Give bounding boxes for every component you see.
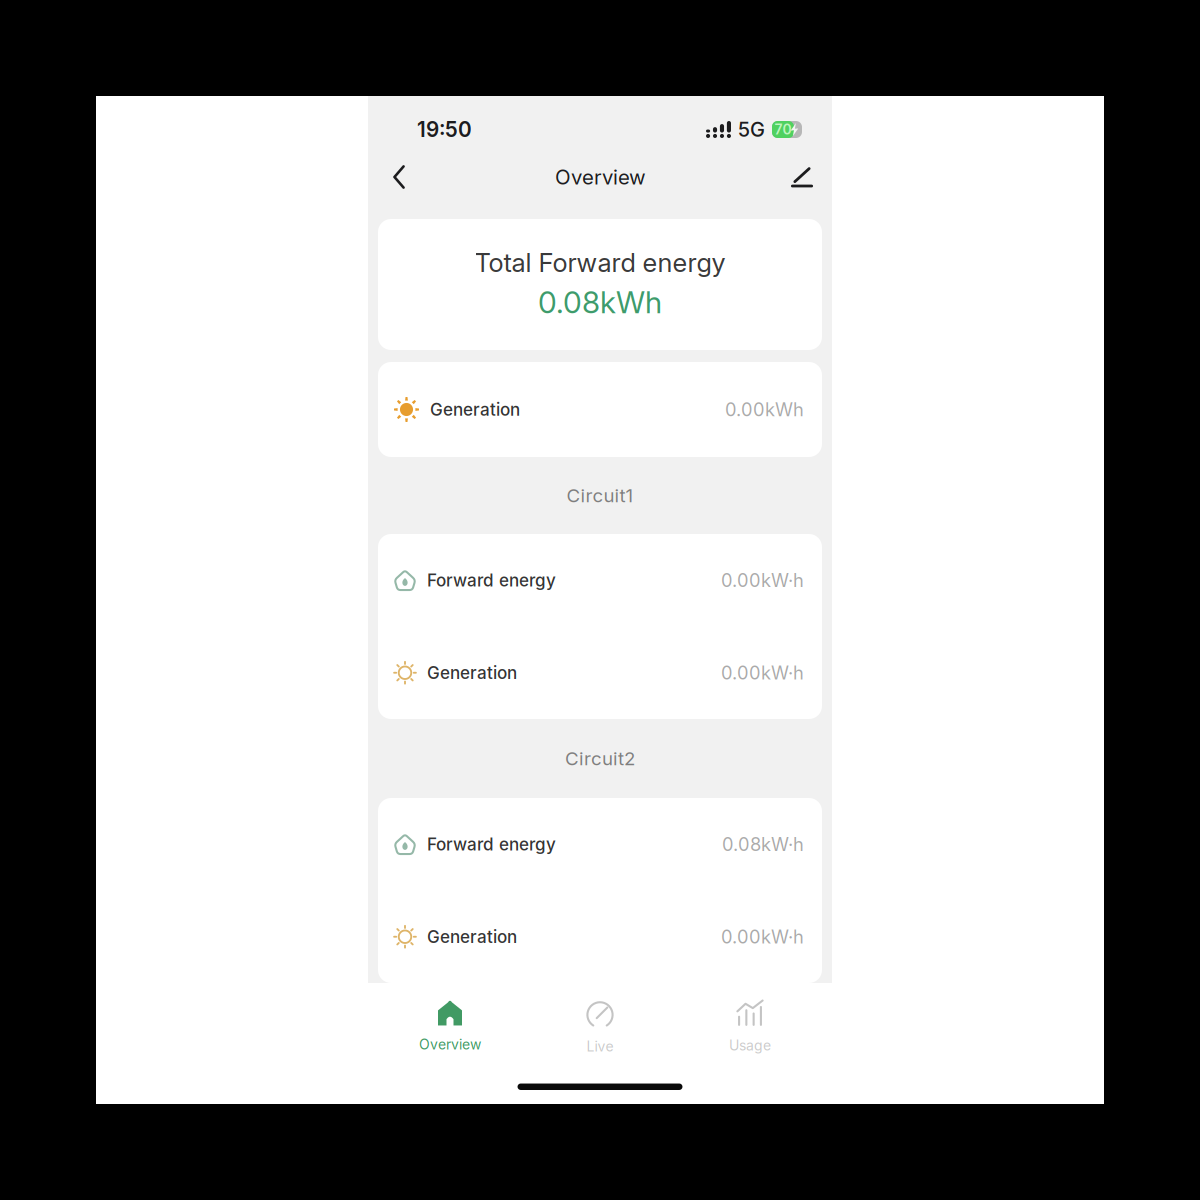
button[interactable]: Live [525, 983, 675, 1062]
staticText: Circuit1 [566, 484, 633, 507]
staticText: Generation [427, 926, 517, 947]
staticText: Circuit2 [565, 747, 635, 770]
button[interactable]: Forward energy [378, 534, 822, 626]
staticText: 0.08kW·h [722, 833, 804, 855]
staticText: 70 [774, 121, 791, 138]
staticText: Generation [430, 399, 520, 420]
staticText: 0.00kW·h [721, 569, 804, 591]
staticText: Forward energy [427, 570, 556, 590]
staticText: 0.08kWh [538, 284, 662, 320]
button[interactable]: Generation [378, 362, 822, 457]
staticText: Live [586, 1038, 613, 1055]
staticText: Total Forward energy [474, 247, 725, 278]
button[interactable]: Edit [779, 160, 825, 194]
button[interactable]: Overview [375, 983, 525, 1062]
staticText: Usage [729, 1037, 771, 1054]
button[interactable]: Generation [378, 626, 822, 719]
staticText: 5G [738, 117, 765, 142]
staticText: Generation [427, 662, 517, 683]
staticText: Overview [555, 165, 646, 189]
staticText: 0.00kW·h [721, 926, 804, 948]
staticText: Overview [419, 1036, 481, 1053]
button[interactable]: Back [376, 160, 422, 194]
button[interactable]: Generation [378, 890, 822, 983]
button[interactable]: Usage [675, 983, 825, 1062]
staticText: 0.00kW·h [721, 662, 804, 684]
staticText: Forward energy [427, 834, 556, 854]
staticText: 0.00kWh [725, 398, 804, 420]
button[interactable]: Forward energy [378, 798, 822, 890]
staticText: 19:50 [417, 117, 472, 142]
